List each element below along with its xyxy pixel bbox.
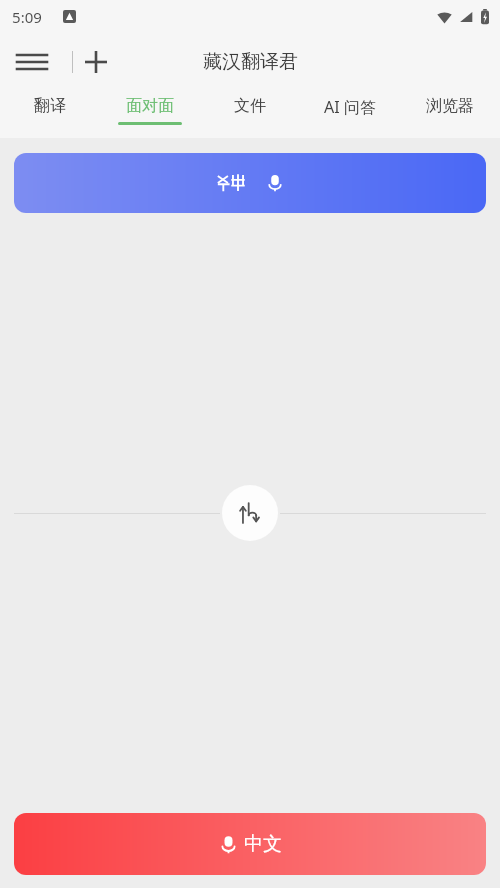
button[interactable]: Swap languages (222, 485, 278, 541)
button[interactable]: AI 问答 (300, 90, 400, 138)
staticText: 5:09 (12, 7, 42, 27)
staticText: 藏汉翻译君 (203, 50, 298, 74)
button[interactable]: Menu (10, 40, 54, 84)
button[interactable]: Speak Tibetan (14, 153, 486, 213)
staticText: AI 问答 (324, 96, 376, 118)
button[interactable]: 浏览器 (400, 90, 500, 138)
staticText: 面对面 (126, 96, 174, 116)
button[interactable]: Speak Chinese (14, 813, 486, 875)
staticText: 浏览器 (426, 96, 474, 116)
button[interactable]: 翻译 (0, 90, 100, 138)
staticText: 中文 (244, 832, 282, 856)
staticText: 文件 (234, 96, 266, 116)
button[interactable]: Add (74, 40, 118, 84)
button[interactable]: 文件 (200, 90, 300, 138)
staticText: 翻译 (34, 96, 66, 116)
button[interactable]: 面对面 (100, 90, 200, 138)
